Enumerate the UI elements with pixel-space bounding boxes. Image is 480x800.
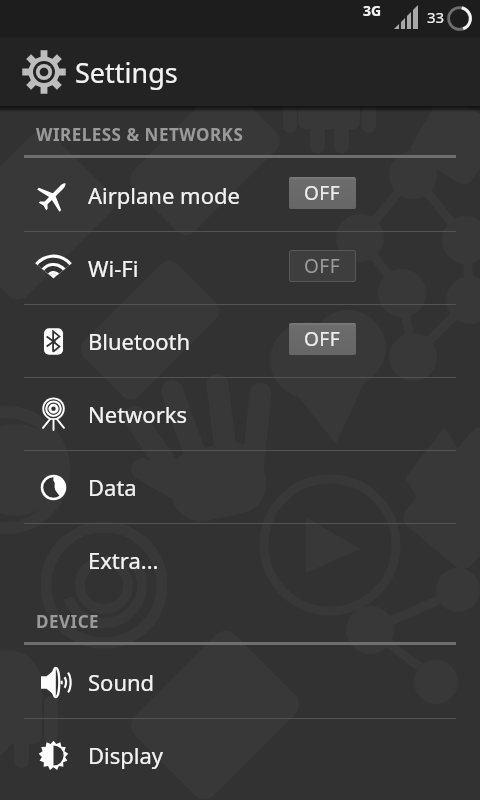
button[interactable]: OFF <box>289 323 356 355</box>
button[interactable]: Bluetooth <box>0 305 480 377</box>
staticText: WIRELESS & NETWORKS <box>36 123 244 146</box>
button[interactable]: OFF <box>289 177 356 209</box>
staticText: Display <box>88 740 164 770</box>
staticText: OFF <box>304 253 341 279</box>
button[interactable]: OFF <box>289 250 356 282</box>
staticText: Extra... <box>88 545 159 575</box>
staticText: OFF <box>304 180 341 206</box>
staticText: Networks <box>88 399 188 429</box>
staticText: DEVICE <box>36 610 100 633</box>
staticText: Sound <box>88 667 155 697</box>
button[interactable]: Data <box>0 451 480 523</box>
staticText: Wi-Fi <box>88 253 139 283</box>
button[interactable]: Networks <box>0 378 480 450</box>
staticText: 3G <box>363 1 382 20</box>
staticText: Settings <box>75 54 178 91</box>
staticText: 33 <box>427 7 445 27</box>
staticText: Airplane mode <box>88 180 240 210</box>
button[interactable]: Display <box>0 719 480 791</box>
button[interactable]: Airplane mode <box>0 159 480 231</box>
staticText: Bluetooth <box>88 326 191 356</box>
staticText: OFF <box>304 326 341 352</box>
button[interactable]: Wi-Fi <box>0 232 480 304</box>
button[interactable]: Extra... <box>0 524 480 596</box>
button[interactable]: Sound <box>0 646 480 718</box>
staticText: Data <box>88 472 137 502</box>
